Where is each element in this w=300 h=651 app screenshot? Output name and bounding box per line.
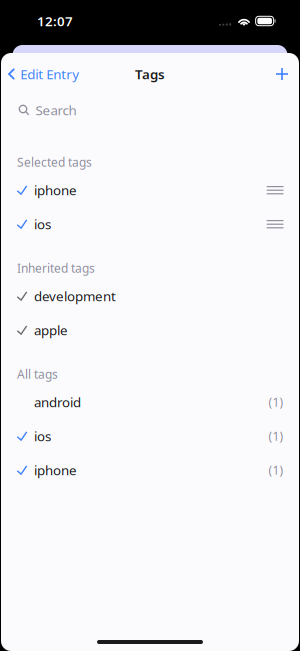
- staticText: Edit Entry: [20, 65, 79, 83]
- button[interactable]: Search: [1, 100, 299, 120]
- button[interactable]: apple: [1, 313, 299, 347]
- staticText: All tags: [17, 366, 58, 382]
- staticText: development: [34, 287, 116, 305]
- staticText: ios: [34, 215, 51, 233]
- staticText: iphone: [34, 461, 77, 479]
- staticText: Inherited tags: [17, 260, 95, 276]
- staticText: (1): [268, 462, 283, 478]
- staticText: ios: [34, 427, 51, 445]
- button[interactable]: ios: [1, 419, 299, 453]
- staticText: Search: [35, 101, 76, 119]
- staticText: (1): [268, 428, 283, 444]
- button[interactable]: Add tag: [265, 59, 299, 89]
- button[interactable]: android: [1, 385, 299, 419]
- button[interactable]: Edit Entry: [1, 59, 87, 89]
- button[interactable]: iphone: [1, 173, 299, 207]
- staticText: apple: [34, 321, 68, 339]
- button[interactable]: ios: [1, 207, 299, 241]
- staticText: android: [34, 393, 81, 411]
- staticText: Tags: [135, 65, 165, 83]
- button[interactable]: development: [1, 279, 299, 313]
- staticText: (1): [268, 394, 283, 410]
- staticText: iphone: [34, 181, 77, 199]
- staticText: Selected tags: [17, 154, 92, 170]
- button[interactable]: iphone: [1, 453, 299, 487]
- staticText: 12:07: [37, 12, 73, 30]
